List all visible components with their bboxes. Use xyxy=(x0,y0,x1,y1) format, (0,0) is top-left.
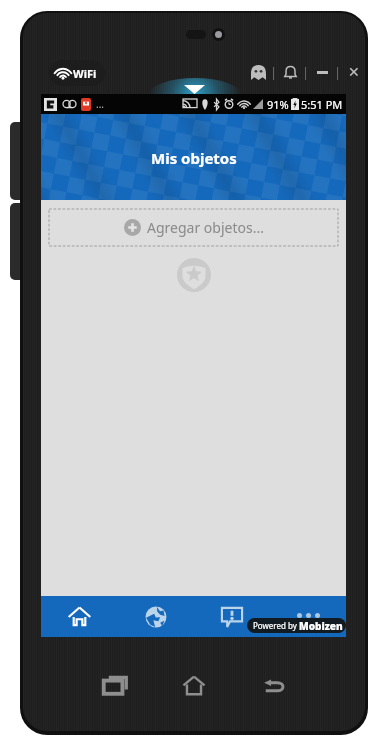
button[interactable]: Back xyxy=(252,663,296,707)
button[interactable]: Agregar objetos... xyxy=(49,209,338,246)
button[interactable]: Feedback xyxy=(194,596,270,637)
staticText: | xyxy=(270,63,278,81)
button[interactable]: WiFi xyxy=(49,60,105,86)
button[interactable]: More options xyxy=(270,596,346,637)
staticText: WiFi xyxy=(73,66,97,81)
button[interactable]: Explore xyxy=(118,596,194,637)
staticText: Agregar objetos... xyxy=(147,218,264,237)
staticText: 91% xyxy=(267,97,289,112)
staticText: Mis objetos xyxy=(151,148,237,168)
button[interactable]: Notifications xyxy=(280,62,300,82)
button[interactable]: Close xyxy=(344,62,364,82)
staticText: ... xyxy=(96,97,105,111)
button[interactable]: Minimize xyxy=(312,62,332,82)
button[interactable]: Face xyxy=(248,62,268,82)
button[interactable]: Home xyxy=(172,663,216,707)
button[interactable]: Recent apps xyxy=(93,663,137,707)
staticText: | xyxy=(334,63,342,81)
staticText: | xyxy=(302,63,310,81)
staticText: ✕ xyxy=(348,64,360,80)
staticText: Mobizen xyxy=(299,619,343,633)
staticText: 5:51 PM xyxy=(301,97,343,112)
staticText: Powered by xyxy=(253,620,299,631)
button[interactable]: Home xyxy=(41,596,118,637)
